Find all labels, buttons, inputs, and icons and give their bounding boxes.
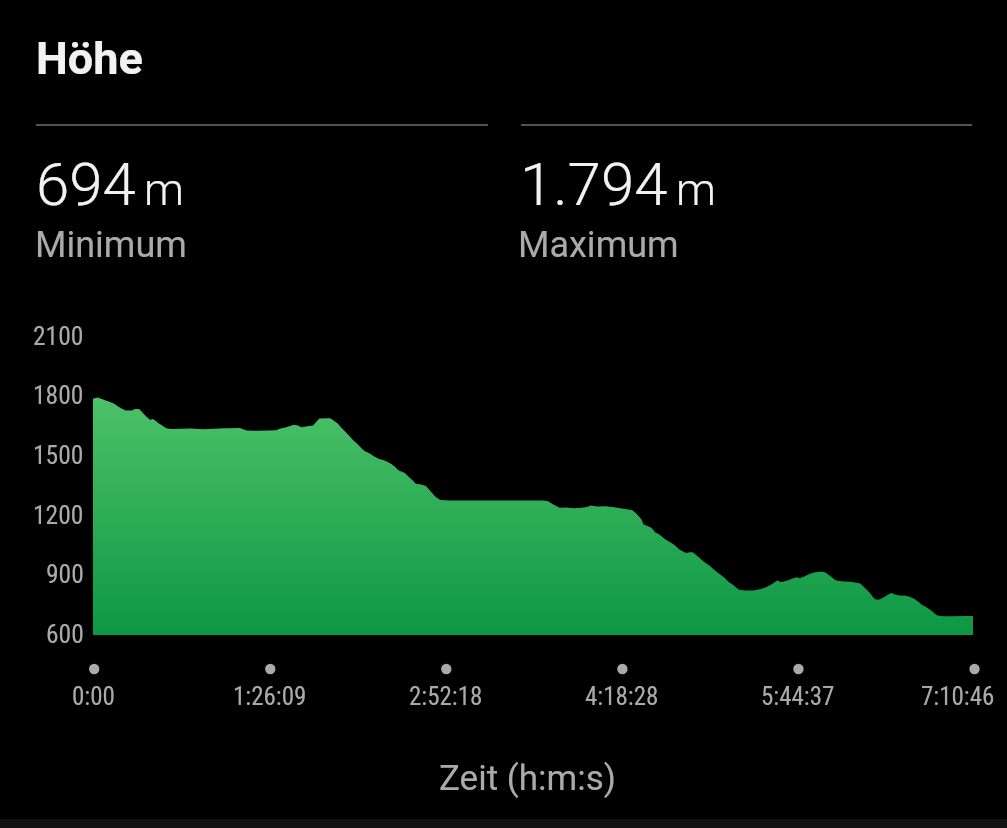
staticText: 1800 <box>33 380 84 410</box>
staticText: 694 <box>36 149 136 219</box>
staticText: 5:44:37 <box>761 682 835 711</box>
staticText: m <box>676 163 716 216</box>
staticText: m <box>144 163 184 216</box>
staticText: Maximum <box>518 224 679 266</box>
staticText: Minimum <box>35 224 187 266</box>
staticText: 7:10:46 <box>921 682 995 711</box>
staticText: 1:26:09 <box>233 682 307 711</box>
staticText: 900 <box>46 559 84 589</box>
staticText: 2100 <box>33 321 84 351</box>
button[interactable]: Maximum 1.794 m <box>509 134 973 274</box>
button[interactable]: Höhe section <box>0 18 1007 110</box>
staticText: 1500 <box>33 440 84 470</box>
button[interactable]: Minimum 694 m <box>24 134 488 274</box>
staticText: Zeit (h:m:s) <box>439 758 616 799</box>
staticText: 1200 <box>33 500 84 530</box>
staticText: 4:18:28 <box>585 682 659 711</box>
staticText: 2:52:18 <box>409 682 483 711</box>
staticText: Höhe <box>36 32 143 85</box>
button[interactable]: Elevation over time chart <box>24 310 983 710</box>
staticText: 600 <box>46 619 84 649</box>
staticText: 0:00 <box>72 682 115 711</box>
staticText: 1.794 <box>520 149 668 219</box>
